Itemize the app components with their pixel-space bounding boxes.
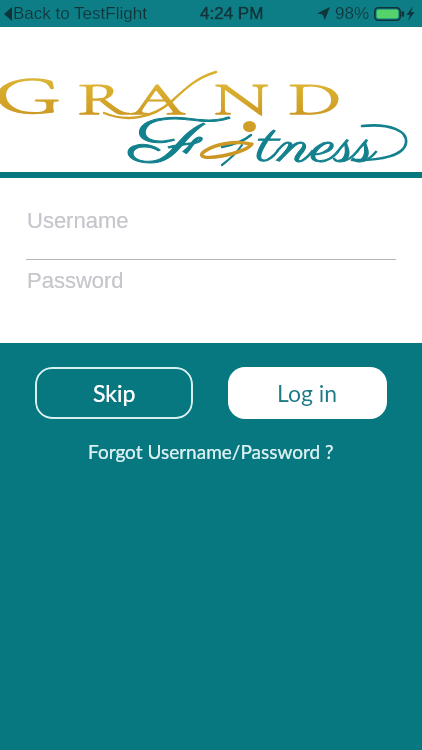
staticText: Log in [277, 379, 338, 407]
staticText: Skip [93, 379, 136, 407]
staticText: tness [258, 112, 376, 184]
staticText: 98% [335, 4, 370, 23]
staticText: Back to TestFlight [13, 4, 147, 23]
staticText: Password [27, 268, 124, 293]
staticText: A [131, 71, 186, 127]
staticText: G [0, 63, 62, 128]
staticText: F [130, 103, 204, 187]
staticText: D [288, 71, 342, 127]
staticText: N [213, 71, 270, 127]
staticText: 4:24 PM [200, 4, 264, 23]
staticText: D [288, 71, 342, 127]
staticText: R [77, 71, 129, 127]
button[interactable]: Log in [228, 367, 387, 419]
button[interactable]: Forgot Username/Password ? [88, 440, 334, 463]
staticText: N [213, 71, 270, 127]
staticText: A [131, 71, 186, 127]
button[interactable]: Skip [35, 367, 193, 419]
staticText: Username [27, 208, 129, 233]
staticText: tness [258, 112, 376, 184]
staticText: F [130, 103, 204, 187]
staticText: R [77, 71, 129, 127]
staticText: G [0, 63, 62, 128]
